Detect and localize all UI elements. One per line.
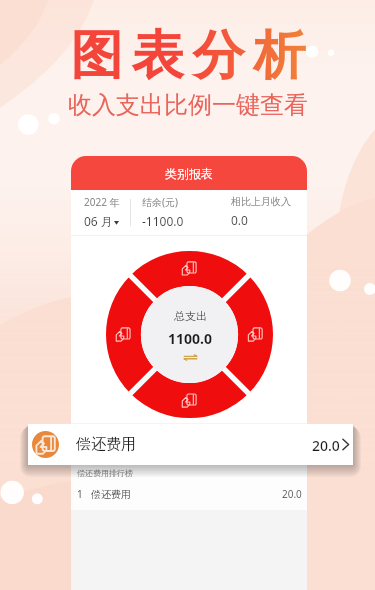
- staticText: 0.0: [231, 212, 248, 228]
- staticText: 1100.0: [168, 329, 212, 348]
- staticText: 偿还费用: [91, 488, 131, 501]
- staticText: 结余(元): [142, 195, 178, 209]
- staticText: 2022 年: [84, 195, 120, 209]
- staticText: 偿还费用排行榜: [77, 468, 133, 478]
- staticText: 偿还费用: [76, 435, 136, 454]
- staticText: 总支出: [174, 309, 207, 323]
- staticText: 类别报表: [165, 166, 213, 181]
- staticText: 图表分析: [66, 23, 310, 89]
- button[interactable]: 偿还费用: [28, 424, 353, 465]
- staticText: -1100.0: [142, 213, 184, 229]
- staticText: 20.0: [282, 487, 302, 501]
- staticText: 1: [77, 487, 83, 501]
- staticText: 相比上月收入: [231, 195, 291, 208]
- staticText: 06 月: [84, 213, 113, 229]
- staticText: 20.0: [312, 436, 340, 455]
- staticText: 收入支出比例一键查看: [68, 90, 308, 120]
